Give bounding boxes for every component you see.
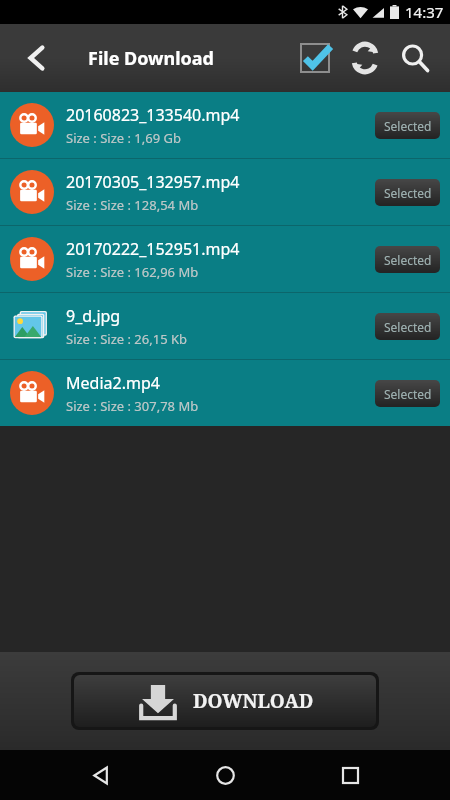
button[interactable]: 20170305_132957.mp4 (0, 159, 450, 225)
staticText: DOWNLOAD (193, 688, 314, 714)
button[interactable]: Search (390, 33, 440, 83)
staticText: Size : Size : 162,96 Mb (66, 263, 199, 281)
button[interactable]: Selected (375, 313, 440, 340)
staticText: File Download (88, 46, 214, 71)
staticText: 20170305_132957.mp4 (66, 171, 240, 193)
button[interactable]: 20160823_133540.mp4 (0, 92, 450, 158)
button[interactable]: DOWNLOAD (74, 675, 376, 727)
staticText: Selected (384, 386, 432, 402)
button[interactable]: Refresh (340, 33, 390, 83)
button[interactable]: 9_d.jpg (0, 293, 450, 359)
staticText: Size : Size : 307,78 Mb (66, 397, 199, 415)
button[interactable]: Home (201, 751, 249, 799)
staticText: 9_d.jpg (66, 305, 121, 327)
staticText: Selected (384, 185, 432, 201)
button[interactable]: Media2.mp4 (0, 360, 450, 426)
button[interactable]: Selected (375, 246, 440, 273)
staticText: Selected (384, 252, 432, 268)
staticText: 20160823_133540.mp4 (66, 104, 240, 126)
button[interactable]: Selected (375, 179, 440, 206)
button[interactable]: Back (77, 751, 125, 799)
button[interactable]: Selected (375, 112, 440, 139)
staticText: Size : Size : 26,15 Kb (66, 330, 188, 348)
staticText: Size : Size : 1,69 Gb (66, 129, 181, 147)
staticText: Media2.mp4 (66, 372, 160, 394)
staticText: 20170222_152951.mp4 (66, 238, 240, 260)
staticText: Size : Size : 128,54 Mb (66, 196, 199, 214)
staticText: Selected (384, 118, 432, 134)
button[interactable]: Select all (290, 33, 340, 83)
button[interactable]: Recents (326, 751, 374, 799)
button[interactable]: Selected (375, 380, 440, 407)
button[interactable]: Back (12, 34, 60, 82)
staticText: Selected (384, 319, 432, 335)
button[interactable]: 20170222_152951.mp4 (0, 226, 450, 292)
staticText: 14:37 (405, 2, 444, 22)
